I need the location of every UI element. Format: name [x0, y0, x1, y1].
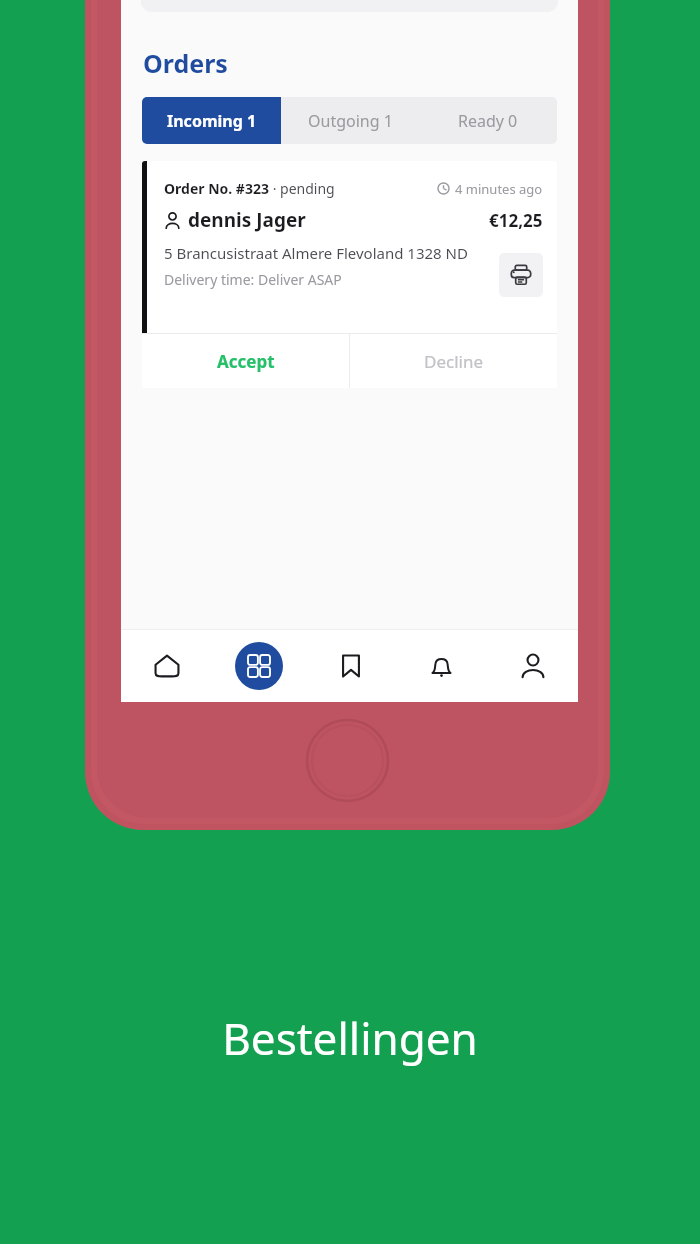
staticText: €12,25: [489, 209, 543, 232]
staticText: Outgoing 1: [308, 110, 393, 132]
button[interactable]: Profile: [487, 630, 578, 702]
staticText: 4 minutes ago: [455, 180, 543, 198]
staticText: Orders: [143, 46, 228, 80]
staticText: Decline: [424, 350, 484, 373]
button[interactable]: Saved: [305, 630, 396, 702]
staticText: Bestellingen: [222, 1008, 478, 1068]
button[interactable]: Decline: [350, 334, 557, 388]
staticText: Accept: [217, 350, 275, 373]
staticText: Incoming 1: [167, 110, 257, 132]
button[interactable]: Notifications: [396, 630, 487, 702]
button[interactable]: Ready 0: [419, 97, 557, 144]
staticText: · pending: [269, 179, 335, 198]
button[interactable]: Incoming 1: [142, 97, 281, 144]
staticText: Delivery time: Deliver ASAP: [164, 270, 342, 289]
staticText: dennis Jager: [188, 207, 306, 233]
staticText: Ready 0: [458, 110, 518, 132]
button[interactable]: Print order: [499, 253, 543, 297]
button[interactable]: Outgoing 1: [281, 97, 419, 144]
button[interactable]: Orders: [213, 630, 305, 702]
button[interactable]: Accept: [142, 334, 349, 388]
staticText: 5 Brancusistraat Almere Flevoland 1328 N…: [164, 243, 468, 263]
button[interactable]: Home: [121, 630, 213, 702]
staticText: Order No. #323: [164, 179, 269, 198]
